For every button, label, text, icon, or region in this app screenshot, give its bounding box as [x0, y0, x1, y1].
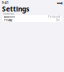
- staticText: GENERAL: [3, 12, 14, 15]
- staticText: 9:41: [2, 1, 9, 5]
- staticText: Account: [4, 15, 15, 18]
- staticText: ▪▪▮: [57, 1, 62, 4]
- staticText: Privacy: [4, 18, 12, 22]
- staticText: On: [56, 18, 60, 22]
- staticText: Personal: [48, 15, 60, 18]
- staticText: Settings: [2, 5, 29, 13]
